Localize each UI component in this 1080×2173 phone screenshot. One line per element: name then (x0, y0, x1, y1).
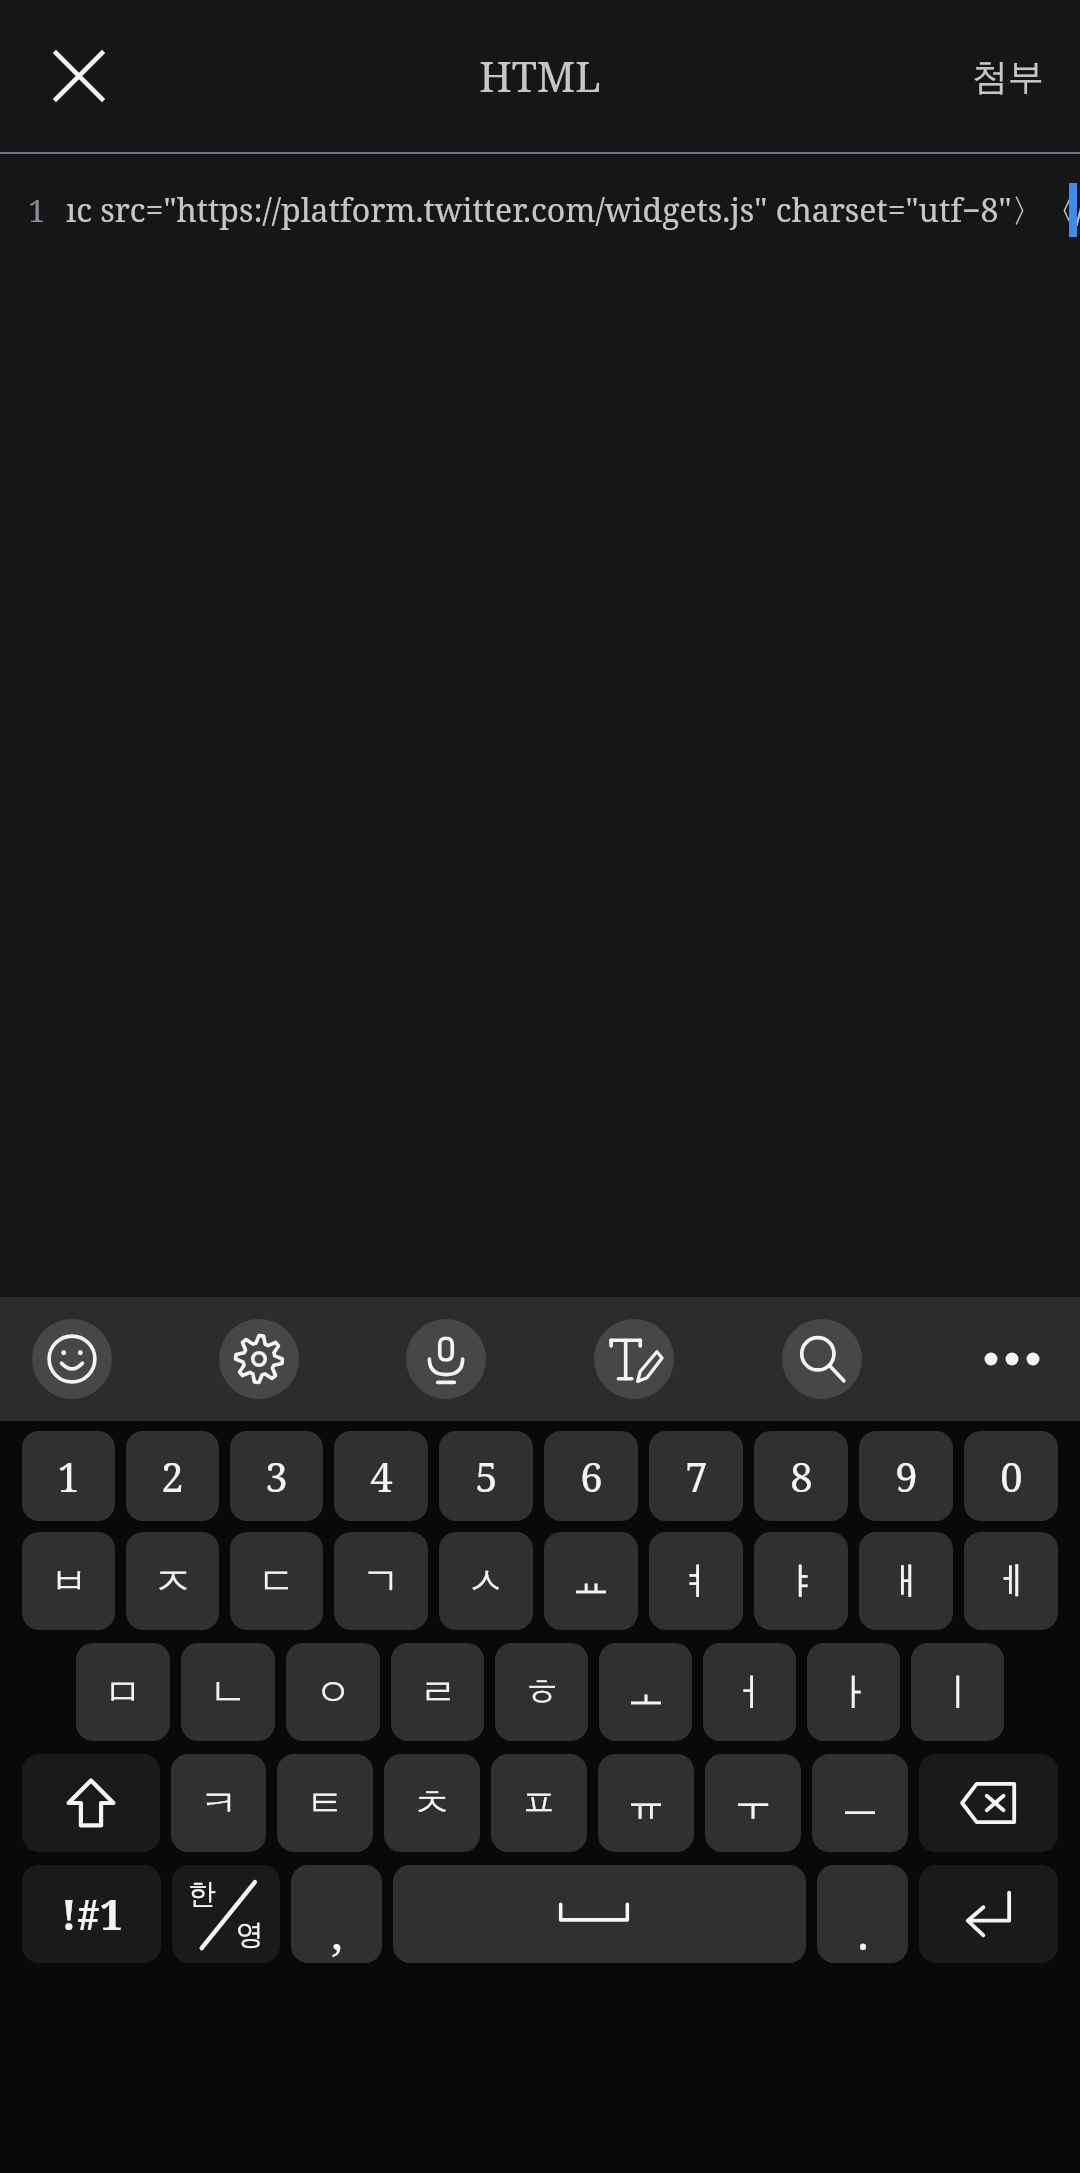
button[interactable]: ㅐ (859, 1532, 953, 1630)
button[interactable]: 4 (334, 1431, 428, 1521)
button[interactable]: 6 (544, 1431, 638, 1521)
button[interactable]: 8 (754, 1431, 848, 1521)
button[interactable]: ㅜ (705, 1754, 801, 1852)
button[interactable]: Space (393, 1865, 806, 1963)
staticText: 2 (161, 1449, 184, 1503)
staticText: 0 (1000, 1449, 1023, 1503)
button[interactable]: ㄹ (391, 1643, 484, 1741)
button[interactable]: 1 (22, 1431, 115, 1521)
button[interactable]: . (817, 1865, 908, 1963)
staticText: ㅋ (200, 1779, 238, 1827)
staticText: ㅏ (835, 1668, 873, 1716)
button[interactable]: Settings (219, 1319, 299, 1399)
staticText: ㅅ (467, 1557, 505, 1605)
staticText: 7 (685, 1449, 708, 1503)
button[interactable]: ㅇ (286, 1643, 380, 1741)
staticText: ㄱ (362, 1557, 400, 1605)
button[interactable]: ㅡ (812, 1754, 908, 1852)
staticText: 3 (265, 1449, 288, 1503)
button[interactable]: ㅈ (126, 1532, 219, 1630)
staticText: ㅁ (104, 1668, 142, 1716)
button[interactable]: Emoji (32, 1319, 112, 1399)
button[interactable]: 첨부 (936, 30, 1080, 123)
button[interactable]: 0 (964, 1431, 1058, 1521)
button[interactable]: ㅛ (544, 1532, 638, 1630)
staticText: ㄹ (419, 1668, 457, 1716)
button[interactable]: ㅎ (495, 1643, 588, 1741)
button[interactable]: 9 (859, 1431, 953, 1521)
staticText: 6 (580, 1449, 603, 1503)
staticText: ㅔ (992, 1557, 1030, 1605)
staticText: ㅑ (782, 1557, 820, 1605)
button[interactable]: ㅑ (754, 1532, 848, 1630)
button[interactable]: Backspace (919, 1754, 1058, 1852)
staticText: 영 (236, 1917, 264, 1952)
button[interactable]: ㅁ (76, 1643, 170, 1741)
staticText: , (331, 1901, 343, 1963)
staticText: ㅣ (939, 1668, 977, 1716)
button[interactable]: ㅊ (384, 1754, 480, 1852)
staticText: ㅗ (627, 1668, 665, 1716)
button[interactable]: ㄱ (334, 1532, 428, 1630)
staticText: ㄷ (258, 1557, 296, 1605)
button[interactable]: 3 (230, 1431, 323, 1521)
staticText: 한 (188, 1876, 216, 1911)
staticText: ıc src="https://platform.twitter.com/wid… (66, 188, 1080, 232)
staticText: 첨부 (972, 54, 1044, 99)
staticText: ㄴ (209, 1668, 247, 1716)
staticText: ㅇ (314, 1668, 352, 1716)
button[interactable]: !#1 (22, 1865, 161, 1963)
staticText: 9 (895, 1449, 918, 1503)
staticText: ㅍ (520, 1779, 558, 1827)
button[interactable]: ㅠ (598, 1754, 694, 1852)
button[interactable]: ㅕ (649, 1532, 743, 1630)
button[interactable]: ㄷ (230, 1532, 323, 1630)
staticText: 8 (790, 1449, 813, 1503)
button[interactable]: Voice input (406, 1319, 486, 1399)
staticText: ㅓ (731, 1668, 769, 1716)
button[interactable]: ㅗ (599, 1643, 692, 1741)
button[interactable]: ㅣ (911, 1643, 1004, 1741)
staticText: . (857, 1901, 869, 1963)
button[interactable]: Enter (919, 1865, 1058, 1963)
button[interactable]: 7 (649, 1431, 743, 1521)
staticText: HTML (479, 48, 601, 104)
staticText: ㅌ (306, 1779, 344, 1827)
button[interactable]: ㅓ (703, 1643, 796, 1741)
staticText: 1 (57, 1449, 80, 1503)
staticText: ㅠ (627, 1779, 665, 1827)
staticText: ㅊ (413, 1779, 451, 1827)
button[interactable]: ㅔ (964, 1532, 1058, 1630)
staticText: ㅕ (677, 1557, 715, 1605)
staticText: ㅎ (523, 1668, 561, 1716)
button[interactable]: ㅅ (439, 1532, 533, 1630)
staticText: ㅛ (572, 1557, 610, 1605)
button[interactable]: Search (782, 1319, 862, 1399)
staticText: ㅂ (50, 1557, 88, 1605)
button[interactable]: Korean English toggle (172, 1865, 280, 1963)
staticText: 5 (475, 1449, 498, 1503)
staticText: ㅜ (734, 1779, 772, 1827)
button[interactable]: ㄴ (181, 1643, 275, 1741)
button[interactable]: ㅍ (491, 1754, 587, 1852)
button[interactable]: ㅋ (171, 1754, 266, 1852)
button[interactable]: More options (970, 1317, 1054, 1401)
button[interactable]: 2 (126, 1431, 219, 1521)
staticText: 1 (28, 189, 46, 231)
staticText: !#1 (61, 1886, 123, 1942)
button[interactable]: ㅏ (807, 1643, 900, 1741)
staticText: 4 (370, 1449, 393, 1503)
button[interactable]: ㅂ (22, 1532, 115, 1630)
staticText: ㅡ (841, 1779, 879, 1827)
button[interactable]: 5 (439, 1431, 533, 1521)
button[interactable]: Shift (22, 1754, 160, 1852)
staticText: ㅐ (887, 1557, 925, 1605)
button[interactable]: Close (30, 27, 128, 125)
button[interactable]: Handwriting (594, 1319, 674, 1399)
button[interactable]: ㅌ (277, 1754, 373, 1852)
staticText: ㅈ (154, 1557, 192, 1605)
button[interactable]: , (291, 1865, 382, 1963)
